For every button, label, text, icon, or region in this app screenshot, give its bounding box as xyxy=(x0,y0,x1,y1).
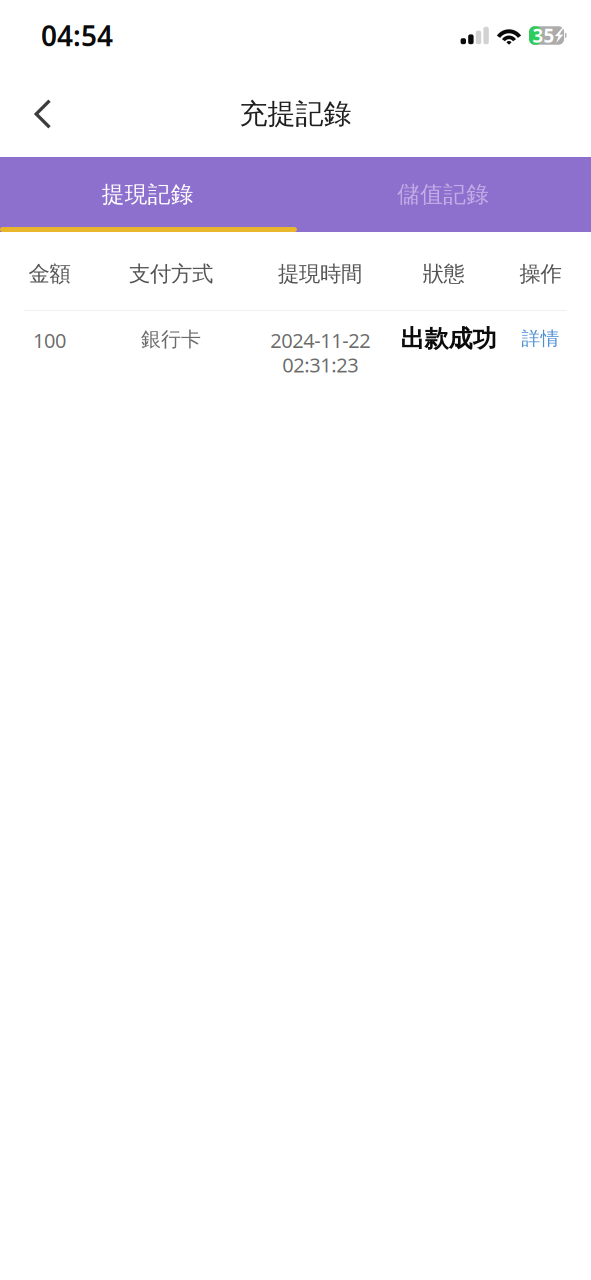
staticText: 04:54 xyxy=(41,17,113,54)
staticText: 支付方式 xyxy=(129,261,213,287)
staticText: 金額 xyxy=(28,261,70,287)
staticText: 35 xyxy=(532,23,554,48)
staticText: 狀態 xyxy=(422,261,464,287)
button[interactable]: 詳情 xyxy=(490,327,591,350)
staticText: 充提記錄 xyxy=(239,97,351,131)
button[interactable]: Back xyxy=(17,86,69,142)
staticText: 操作 xyxy=(519,261,561,287)
staticText: 儲值記錄 xyxy=(397,181,489,208)
button[interactable]: 提現記錄 xyxy=(0,157,295,232)
staticText: 提現記錄 xyxy=(102,181,194,208)
button[interactable]: 儲值記錄 xyxy=(295,157,591,232)
staticText: 2024-11-22 02:31:23 xyxy=(270,327,370,378)
staticText: 銀行卡 xyxy=(141,327,201,352)
staticText: 詳情 xyxy=(521,327,559,350)
staticText: 出款成功 xyxy=(400,324,496,353)
staticText: 100 xyxy=(33,327,66,354)
staticText: 提現時間 xyxy=(278,261,362,287)
